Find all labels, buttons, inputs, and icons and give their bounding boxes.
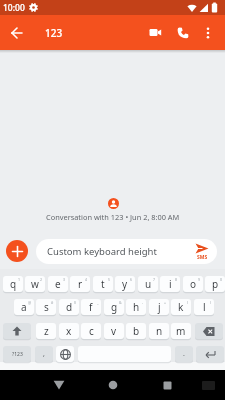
button[interactable]: . (175, 346, 193, 362)
button[interactable] (6, 240, 28, 262)
staticText: c (89, 324, 94, 338)
button[interactable]: k (171, 299, 191, 315)
staticText: e (55, 277, 61, 291)
staticText: r (78, 277, 83, 291)
staticText: u (145, 277, 152, 291)
staticText: 5 (108, 277, 111, 282)
button[interactable]: d (59, 299, 79, 315)
staticText: Conversation with 123 • Jun 2, 8:00 AM (46, 212, 180, 222)
staticText: 4 (85, 277, 88, 282)
staticText: . (183, 349, 185, 359)
button[interactable] (196, 21, 220, 45)
button[interactable] (196, 346, 224, 362)
staticText: t (101, 277, 105, 291)
staticText: ?123 (12, 351, 23, 358)
button[interactable]: o (183, 276, 203, 292)
button[interactable]: a (14, 299, 34, 315)
button[interactable]: e (48, 276, 68, 292)
staticText: w (31, 277, 39, 291)
staticText: SMS (197, 254, 208, 261)
staticText: m (176, 324, 186, 338)
staticText: 0 (220, 277, 223, 282)
button[interactable] (56, 346, 74, 362)
button[interactable]: i (160, 276, 180, 292)
button[interactable]: , (35, 346, 53, 362)
button[interactable]: c (81, 323, 101, 339)
staticText: o (190, 277, 197, 291)
button[interactable] (142, 19, 169, 46)
staticText: # (51, 300, 54, 305)
button[interactable] (152, 370, 182, 400)
staticText: ( (187, 300, 189, 305)
button[interactable]: r (70, 276, 90, 292)
staticText: - (142, 300, 144, 305)
staticText: l (203, 300, 206, 314)
button[interactable]: l (194, 299, 214, 315)
button[interactable]: m (171, 323, 191, 339)
button[interactable]: n (149, 323, 169, 339)
staticText: f (89, 300, 93, 314)
button[interactable]: b (126, 323, 146, 339)
button[interactable]: ?123 (3, 346, 31, 362)
staticText: s (44, 300, 49, 314)
button[interactable]: v (104, 323, 124, 339)
staticText: z (44, 324, 49, 338)
button[interactable]: w (25, 276, 45, 292)
button[interactable]: u (138, 276, 158, 292)
staticText: y (122, 277, 128, 291)
button[interactable] (98, 370, 128, 400)
staticText: ) (210, 300, 212, 305)
staticText: 2 (40, 277, 43, 282)
staticText: p (212, 277, 219, 291)
staticText: n (156, 324, 163, 338)
button[interactable]: y (115, 276, 135, 292)
button[interactable]: t (93, 276, 113, 292)
button[interactable]: h (126, 299, 146, 315)
staticText: x (66, 324, 72, 338)
button[interactable]: j (149, 299, 169, 315)
staticText: 123 (45, 26, 63, 40)
button[interactable] (6, 22, 28, 44)
button[interactable] (195, 323, 223, 339)
staticText: i (169, 277, 172, 291)
staticText: g (111, 300, 118, 314)
button[interactable] (169, 19, 196, 46)
staticText: Custom keyboard height (47, 245, 157, 258)
staticText: 9 (198, 277, 201, 282)
staticText: v (111, 324, 117, 338)
staticText: 6 (130, 277, 133, 282)
button[interactable]: f (81, 299, 101, 315)
staticText: $ (74, 300, 77, 305)
button[interactable]: g (104, 299, 124, 315)
button[interactable]: s (36, 299, 56, 315)
staticText: @ (28, 300, 32, 305)
staticText: h (133, 300, 140, 314)
staticText: q (10, 277, 17, 291)
button[interactable]: q (3, 276, 23, 292)
button[interactable]: p (205, 276, 225, 292)
staticText: 7 (153, 277, 156, 282)
staticText: 8 (175, 277, 178, 282)
staticText: _ (97, 300, 99, 305)
staticText: 10:00 (3, 2, 25, 14)
button[interactable]: Custom keyboard height (36, 239, 217, 264)
staticText: + (164, 300, 167, 305)
staticText: k (178, 300, 184, 314)
button[interactable]: z (36, 323, 56, 339)
staticText: a (21, 300, 27, 314)
button[interactable]: x (59, 323, 79, 339)
button[interactable] (3, 323, 31, 339)
staticText: 3 (63, 277, 66, 282)
staticText: b (133, 324, 140, 338)
staticText: d (66, 300, 73, 314)
staticText: 1 (18, 277, 21, 282)
staticText: j (158, 300, 161, 314)
button[interactable] (44, 370, 74, 400)
staticText: , (43, 349, 45, 359)
staticText: & (119, 300, 122, 305)
